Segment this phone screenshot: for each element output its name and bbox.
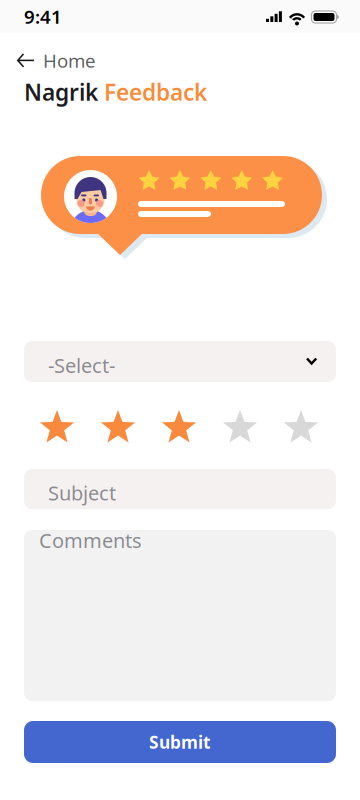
button[interactable]: Comments: [24, 530, 336, 701]
button[interactable]: Rate 1 star: [39, 410, 75, 446]
button[interactable]: Rate 4 stars: [222, 410, 258, 446]
button[interactable]: Rate 2 stars: [100, 410, 136, 446]
staticText: Subject: [48, 479, 116, 506]
button[interactable]: Submit: [24, 721, 336, 763]
staticText: Home: [43, 48, 96, 73]
staticText: 9:41: [24, 4, 62, 29]
button[interactable]: Rate 3 stars: [161, 410, 197, 446]
button[interactable]: Rate 5 stars: [283, 410, 319, 446]
staticText: -Select-: [48, 352, 115, 379]
button[interactable]: Subject: [24, 469, 336, 509]
staticText: Comments: [39, 527, 142, 554]
staticText: Feedback: [104, 77, 207, 107]
button[interactable]: Back to Home: [1, 42, 112, 79]
staticText: Nagrik: [24, 77, 104, 107]
button[interactable]: -Select-: [24, 341, 336, 382]
staticText: Submit: [149, 730, 211, 753]
